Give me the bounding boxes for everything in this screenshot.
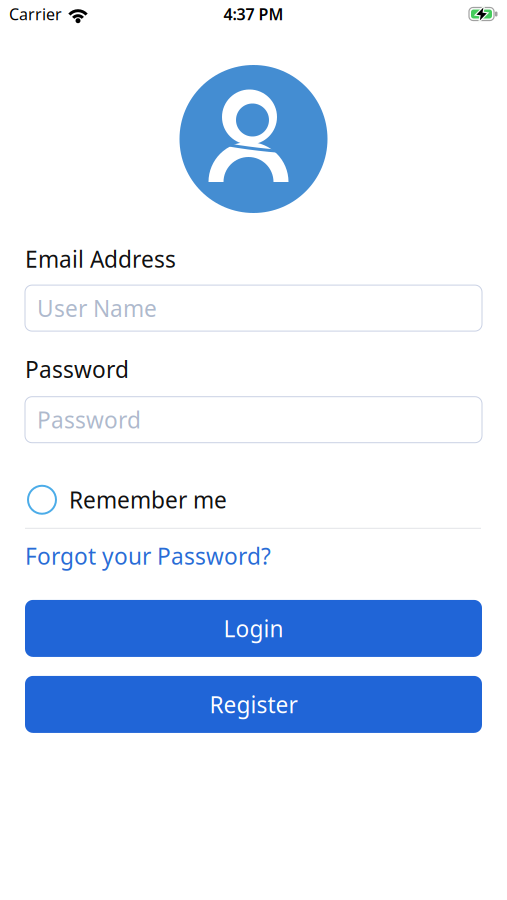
staticText: User Name xyxy=(25,293,145,323)
staticText: Password xyxy=(25,405,129,435)
staticText: Remember me xyxy=(69,485,227,515)
staticText: Register xyxy=(209,689,297,719)
staticText: 4:37 PM xyxy=(223,3,283,25)
button[interactable]: Forgot your Password? xyxy=(0,541,271,571)
textField[interactable]: Password xyxy=(25,405,482,435)
staticText: Password xyxy=(25,354,129,384)
button[interactable]: Register xyxy=(0,676,507,733)
staticText: Email Address xyxy=(25,244,176,274)
staticText: Carrier xyxy=(9,3,62,25)
staticText: Password xyxy=(37,405,141,435)
button[interactable]: Remember me xyxy=(0,485,227,515)
staticText: Login xyxy=(223,613,283,643)
staticText: User Name xyxy=(37,293,157,323)
staticText: Forgot your Password? xyxy=(25,541,271,571)
textField[interactable]: User Name xyxy=(25,293,482,323)
button[interactable]: Login xyxy=(0,600,507,657)
